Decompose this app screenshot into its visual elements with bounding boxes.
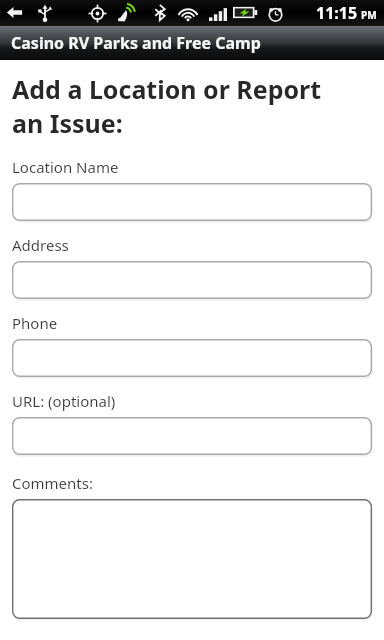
other: Network xyxy=(117,4,136,23)
other: Back xyxy=(6,4,23,21)
staticText: an Issue: xyxy=(12,106,123,140)
staticText: Comments: xyxy=(12,473,93,493)
staticText: Add a Location or Report xyxy=(12,72,322,106)
other: GPS xyxy=(88,4,107,23)
button[interactable] xyxy=(12,339,372,377)
staticText: Casino RV Parks and Free Camp xyxy=(11,32,261,54)
other: Bluetooth xyxy=(152,4,169,21)
other: Signal strength xyxy=(209,7,227,21)
staticText: Address xyxy=(12,235,69,255)
staticText: PM xyxy=(361,8,377,22)
staticText: Location Name xyxy=(12,157,119,177)
other: Battery charging xyxy=(233,4,258,21)
button[interactable] xyxy=(12,183,372,221)
other: Wi-Fi xyxy=(178,3,198,23)
other: Alarm set xyxy=(266,4,285,23)
button[interactable] xyxy=(12,261,372,299)
button[interactable] xyxy=(12,499,372,619)
staticText: 11:15 xyxy=(316,2,358,24)
button[interactable] xyxy=(12,417,372,455)
staticText: Phone xyxy=(12,313,58,333)
other: USB connected xyxy=(36,4,54,22)
staticText: URL: (optional) xyxy=(12,391,116,411)
button[interactable]: Casino RV Parks and Free Camp xyxy=(0,26,384,60)
